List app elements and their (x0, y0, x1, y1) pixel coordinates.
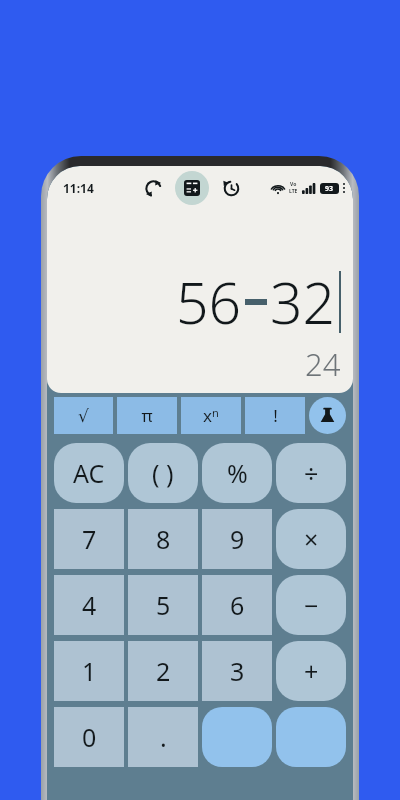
button[interactable]: 3 (202, 641, 272, 701)
button[interactable]: 6 (202, 575, 272, 635)
staticText: 7 (82, 522, 97, 556)
button[interactable]: 4 (54, 575, 124, 635)
button[interactable]: xⁿ (181, 397, 241, 434)
staticText: 9 (230, 522, 245, 556)
button[interactable]: Delete (202, 707, 272, 767)
button[interactable]: ! (245, 397, 305, 434)
staticText: ! (273, 404, 278, 427)
staticText: 6 (230, 588, 245, 622)
staticText: 24 (305, 343, 341, 385)
staticText: AC (73, 456, 105, 490)
button[interactable]: 1 (54, 641, 124, 701)
button[interactable]: ( ) (128, 443, 198, 503)
button[interactable]: AC (54, 443, 124, 503)
staticText: 5 (156, 588, 171, 622)
staticText: 2 (156, 654, 171, 688)
button[interactable]: − (276, 575, 346, 635)
button[interactable]: Equals (276, 707, 346, 767)
button[interactable]: × (276, 509, 346, 569)
button[interactable]: ÷ (276, 443, 346, 503)
staticText: 1 (82, 654, 97, 688)
staticText: 0 (82, 720, 97, 754)
staticText: ( ) (152, 456, 174, 490)
button[interactable]: History (219, 176, 243, 200)
staticText: 4 (82, 588, 97, 622)
button[interactable]: % (202, 443, 272, 503)
staticText: ÷ (304, 456, 319, 490)
staticText: × (304, 522, 319, 556)
button[interactable]: Calculator (175, 171, 209, 205)
button[interactable]: 2 (128, 641, 198, 701)
staticText: LTE (289, 188, 298, 195)
staticText: . (160, 720, 167, 754)
staticText: 32 (270, 263, 336, 341)
staticText: xⁿ (203, 404, 219, 427)
button[interactable]: 0 (54, 707, 124, 767)
button[interactable]: Scientific (309, 397, 346, 434)
staticText: 93 (325, 184, 334, 194)
staticText: 3 (230, 654, 245, 688)
button[interactable]: 8 (128, 509, 198, 569)
staticText: π (141, 404, 153, 427)
button[interactable]: √ (54, 397, 113, 434)
staticText: Vo (290, 181, 297, 188)
staticText: % (227, 456, 248, 490)
button[interactable]: + (276, 641, 346, 701)
button[interactable]: Convert (141, 176, 165, 200)
button[interactable]: . (128, 707, 198, 767)
button[interactable]: 5 (128, 575, 198, 635)
staticText: 8 (156, 522, 171, 556)
button[interactable]: 7 (54, 509, 124, 569)
staticText: √ (78, 406, 89, 426)
staticText: − (304, 588, 319, 622)
staticText: 11:14 (63, 180, 94, 196)
button[interactable]: 9 (202, 509, 272, 569)
button[interactable]: π (117, 397, 177, 434)
staticText: + (304, 654, 319, 688)
staticText: 56 (176, 263, 242, 341)
